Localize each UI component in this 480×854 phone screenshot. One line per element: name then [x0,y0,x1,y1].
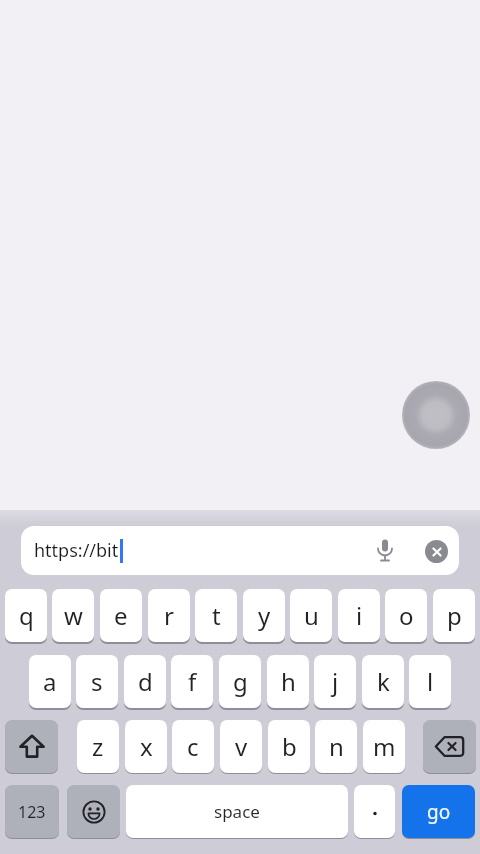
button[interactable]: i [338,589,380,642]
button[interactable] [354,785,395,838]
button[interactable]: w [52,589,94,642]
staticText: f [188,665,197,698]
staticText: https://bit [34,538,119,563]
staticText: 123 [18,801,46,823]
button[interactable]: r [148,589,190,642]
button[interactable]: k [362,655,404,708]
staticText: t [212,599,221,632]
button[interactable]: b [268,720,310,773]
staticText: s [91,665,103,698]
button[interactable]: g [219,655,261,708]
staticText: g [233,665,248,698]
staticText: e [114,599,128,632]
staticText: m [373,730,396,763]
staticText: h [281,665,296,698]
button[interactable]: d [124,655,166,708]
button[interactable] [402,381,470,449]
button[interactable]: a [29,655,71,708]
staticText: n [329,730,344,763]
button[interactable] [425,540,448,563]
staticText: p [447,599,462,632]
button[interactable]: go [402,785,475,838]
button[interactable]: j [314,655,356,708]
staticText: l [427,665,434,698]
button[interactable] [423,720,476,773]
staticText: k [377,665,390,698]
button[interactable]: m [363,720,405,773]
staticText: u [304,599,319,632]
button[interactable]: x [125,720,167,773]
staticText: go [427,799,451,825]
staticText: space [214,800,260,823]
button[interactable]: v [220,720,262,773]
staticText: v [235,730,248,763]
button[interactable]: o [385,589,427,642]
button[interactable] [67,785,120,838]
staticText: x [140,730,153,763]
button[interactable]: c [172,720,214,773]
staticText: o [399,599,414,632]
button[interactable]: e [100,589,142,642]
staticText: b [282,730,297,763]
button[interactable]: u [290,589,332,642]
button[interactable]: h [267,655,309,708]
staticText: d [138,665,153,698]
staticText: c [187,730,199,763]
staticText: i [356,599,363,632]
button[interactable]: p [433,589,475,642]
button[interactable] [5,720,58,773]
staticText: q [19,599,34,632]
staticText: a [43,665,57,698]
button[interactable]: 123 [5,785,59,838]
button[interactable]: n [315,720,357,773]
staticText: w [64,599,83,632]
button[interactable]: y [243,589,285,642]
button[interactable]: z [77,720,119,773]
button[interactable]: https://bit [21,526,459,575]
staticText: j [332,665,339,698]
button[interactable]: q [5,589,47,642]
button[interactable]: l [409,655,451,708]
staticText: r [164,599,174,632]
staticText: y [258,599,271,632]
button[interactable]: t [195,589,237,642]
button[interactable]: s [76,655,118,708]
staticText: z [92,730,104,763]
button[interactable]: space [126,785,348,838]
button[interactable]: f [171,655,213,708]
